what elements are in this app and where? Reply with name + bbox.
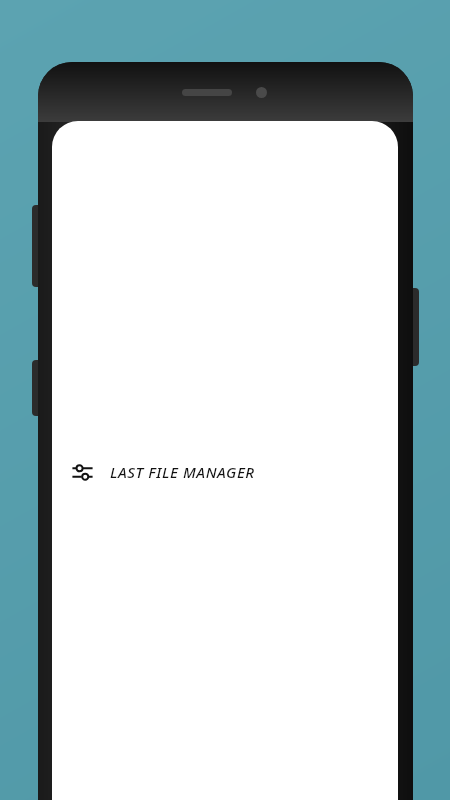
button[interactable]: Settings [64, 454, 100, 490]
staticText: LAST FILE MANAGER [110, 462, 255, 482]
